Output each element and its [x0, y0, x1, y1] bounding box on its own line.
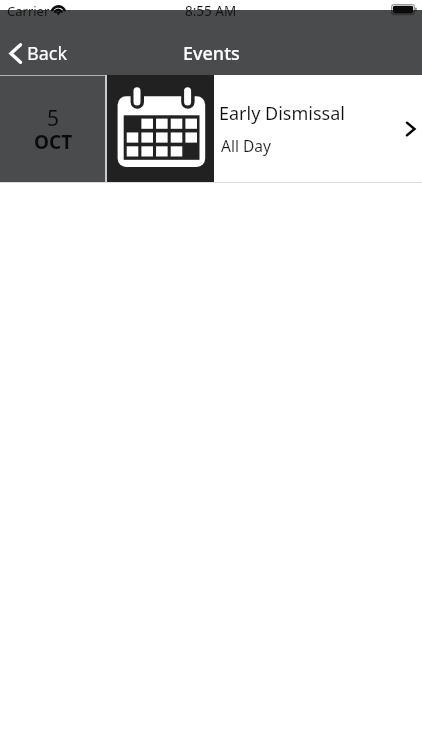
staticText: Back [27, 41, 68, 66]
staticText: Early Dismissal [219, 101, 345, 126]
button[interactable]: Back [0, 33, 82, 74]
button[interactable]: 5 [0, 75, 422, 182]
staticText: All Day [221, 135, 271, 156]
staticText: 8:55 AM [185, 2, 237, 20]
staticText: Carrier [7, 2, 50, 20]
other: Open event [404, 120, 416, 138]
staticText: OCT [34, 129, 73, 155]
staticText: Events [183, 41, 240, 66]
staticText: 5 [47, 104, 60, 133]
